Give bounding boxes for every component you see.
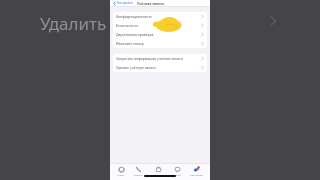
staticText: Учётная запись [137, 1, 165, 6]
button[interactable]: Изменить номер [113, 39, 207, 48]
button[interactable]: Конфиденциальность [113, 12, 207, 21]
staticText: Удалить учётную запись [116, 65, 201, 70]
staticText: Звонки [134, 173, 143, 176]
button[interactable]: Звонки [133, 165, 144, 177]
button[interactable]: Безопасность [113, 21, 207, 30]
button[interactable]: Сообщества [150, 165, 167, 177]
staticText: Настройки [117, 1, 133, 5]
staticText: Сообщества [151, 173, 166, 176]
staticText: Настройки [190, 173, 203, 176]
staticText: Чаты [175, 173, 181, 176]
button[interactable]: Двухэтапная проверка [113, 30, 207, 39]
staticText: Запросить информацию учётной записи [116, 56, 201, 61]
staticText: Статус [117, 173, 125, 176]
button[interactable]: Чаты [173, 165, 182, 177]
staticText: Конфиденциальность [116, 14, 201, 19]
button[interactable]: Удалить учётную запись [113, 63, 207, 72]
other: Next [268, 16, 278, 26]
button[interactable]: Настройки [189, 165, 204, 177]
staticText: Двухэтапная проверка [116, 32, 201, 37]
button[interactable]: Статус [116, 165, 126, 177]
button[interactable]: Запросить информацию учётной записи [113, 54, 207, 63]
staticText: Изменить номер [116, 41, 201, 46]
staticText: Безопасность [116, 23, 201, 28]
staticText: Удалить учёт [40, 12, 147, 35]
